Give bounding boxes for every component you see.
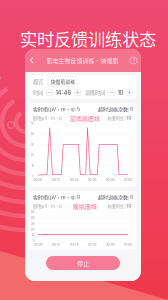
staticText: 00:36: [87, 178, 96, 182]
staticText: 10: [126, 115, 131, 121]
staticText: 10: [126, 203, 131, 209]
staticText: 肌电生物反馈训练·快慢肌: [46, 56, 118, 65]
staticText: 腹肌曲线: [73, 202, 97, 210]
staticText: 40: [30, 132, 34, 136]
staticText: 20: [30, 227, 34, 231]
staticText: 40: [30, 216, 34, 220]
staticText: 肌电(μV·m·s): [33, 203, 62, 209]
staticText: 标准时长:: [108, 115, 125, 121]
staticText: 0: [130, 194, 133, 200]
staticText: 10: [31, 163, 34, 168]
staticText: 训练时间: [85, 89, 105, 96]
staticText: 00:12: [52, 242, 60, 247]
staticText: ?: [132, 58, 134, 63]
staticText: 时间: [33, 89, 43, 96]
staticText: 00:24: [69, 242, 78, 247]
staticText: 00:00: [33, 242, 42, 247]
staticText: 10: [117, 89, 123, 96]
staticText: 14:46: [55, 89, 71, 96]
button[interactable]: 停止: [46, 256, 120, 270]
staticText: 0: [77, 194, 80, 200]
staticText: 实时值(μV·m·s):: [33, 193, 76, 201]
staticText: 超时训练次数:: [98, 193, 129, 201]
staticText: 50: [30, 121, 34, 125]
button[interactable]: 返回: [25, 57, 37, 64]
staticText: 01:00: [124, 178, 132, 182]
staticText: 20: [30, 153, 34, 157]
staticText: 10: [31, 233, 34, 237]
staticText: 实时值(μV·m·s):: [33, 105, 76, 113]
staticText: 00:12: [52, 178, 60, 182]
staticText: 超时训练次数:: [98, 105, 129, 113]
button[interactable]: 帮助: [128, 57, 141, 64]
staticText: 30: [30, 221, 34, 226]
staticText: 00:48: [105, 178, 114, 182]
staticText: 实时反馈训练状态: [20, 26, 156, 51]
staticText: 停止: [77, 259, 89, 267]
staticText: 00:48: [105, 242, 114, 247]
staticText: 标准时长:: [108, 203, 125, 209]
staticText: 00:00: [33, 178, 42, 182]
staticText: 30: [30, 142, 34, 146]
staticText: 5: [77, 106, 80, 112]
staticText: 0: [130, 106, 133, 112]
staticText: 模式: [33, 78, 43, 85]
staticText: 0: [32, 239, 34, 243]
staticText: 盆底肌曲线: [70, 114, 100, 122]
staticText: 50: [30, 210, 34, 214]
staticText: 00:36: [87, 242, 96, 247]
staticText: 快慢肌训练: [50, 78, 75, 85]
staticText: 00:24: [69, 178, 78, 182]
staticText: 肌电(μV·m·s): [33, 115, 62, 121]
staticText: 0: [32, 174, 34, 178]
staticText: 01:00: [124, 242, 132, 247]
